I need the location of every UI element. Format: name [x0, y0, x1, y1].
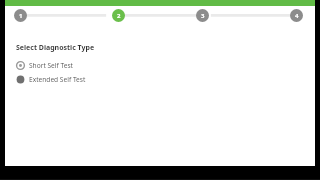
button[interactable]: Step 2	[112, 9, 125, 22]
staticText: Short Self Test	[29, 61, 73, 70]
staticText: Select Diagnostic Type	[16, 43, 95, 53]
staticText: 2	[117, 12, 121, 20]
staticText: 1	[19, 12, 23, 20]
staticText: 3	[201, 12, 205, 20]
button[interactable]: Step 3	[196, 9, 209, 22]
button[interactable]: Step 1	[14, 9, 27, 22]
button[interactable]: Short Self Test	[16, 61, 307, 70]
button[interactable]: Extended Self Test	[16, 75, 307, 84]
staticText: Extended Self Test	[29, 75, 86, 84]
button[interactable]: Step 4	[290, 9, 303, 22]
staticText: 4	[295, 12, 299, 20]
